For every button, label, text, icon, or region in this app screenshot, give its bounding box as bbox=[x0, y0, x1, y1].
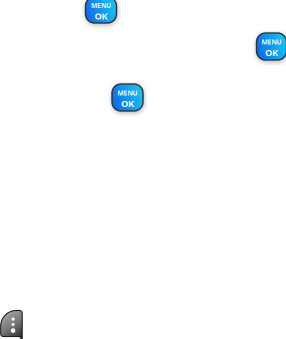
button[interactable]: MENU bbox=[112, 84, 143, 111]
staticText: OK bbox=[121, 97, 134, 110]
staticText: MENU bbox=[261, 37, 281, 46]
button[interactable]: MENU bbox=[85, 0, 116, 23]
staticText: OK bbox=[94, 10, 107, 22]
staticText: MENU bbox=[117, 88, 137, 97]
button[interactable]: MENU bbox=[256, 33, 286, 60]
staticText: MENU bbox=[91, 1, 111, 10]
staticText: OK bbox=[265, 46, 278, 59]
